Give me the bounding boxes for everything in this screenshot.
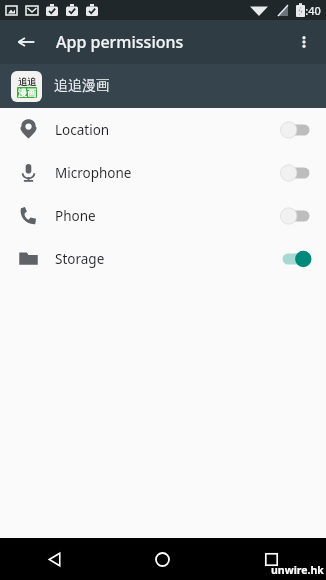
button[interactable]: Back xyxy=(0,538,108,580)
button[interactable]: Microphone permission toggle xyxy=(272,158,320,188)
staticText: Microphone xyxy=(55,164,272,182)
button[interactable]: Storage permission toggle xyxy=(272,244,320,274)
button[interactable]: Phone xyxy=(0,194,326,237)
button[interactable]: Microphone xyxy=(0,151,326,194)
button[interactable]: Storage xyxy=(0,237,326,280)
button[interactable]: Home xyxy=(108,538,217,580)
staticText: 漫画 xyxy=(18,87,36,98)
button[interactable]: More options xyxy=(284,22,324,62)
button[interactable]: Recent apps xyxy=(217,538,326,580)
staticText: Storage xyxy=(55,250,272,268)
staticText: Phone xyxy=(55,207,272,225)
staticText: 追追 xyxy=(18,76,36,87)
staticText: unwire.hk xyxy=(271,563,324,577)
button[interactable]: Location permission toggle xyxy=(272,115,320,145)
button[interactable]: Location xyxy=(0,108,326,151)
button[interactable]: 追追 xyxy=(0,64,326,108)
button[interactable]: Back xyxy=(8,24,44,60)
button[interactable]: Phone permission toggle xyxy=(272,201,320,231)
staticText: 追追漫画 xyxy=(54,77,110,95)
staticText: Location xyxy=(55,121,272,139)
staticText: 6:40 xyxy=(299,3,321,18)
staticText: App permissions xyxy=(56,31,184,53)
